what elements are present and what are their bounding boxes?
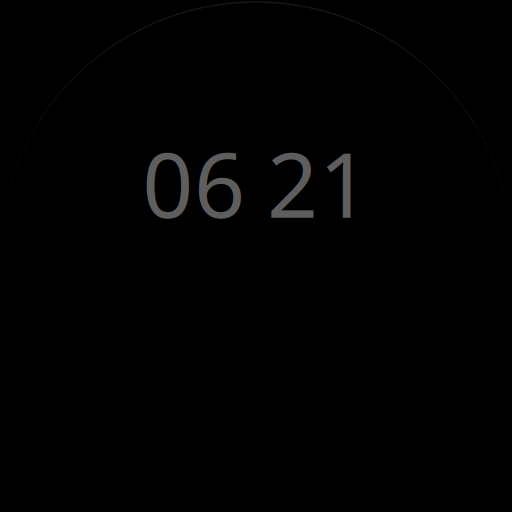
staticText: 21	[267, 124, 370, 242]
button[interactable]: Wake display	[0, 0, 512, 512]
staticText: 06	[142, 124, 245, 242]
